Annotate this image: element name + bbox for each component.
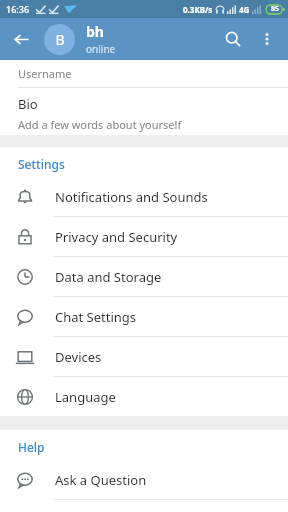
button[interactable]: Privacy and Security xyxy=(0,217,288,256)
button[interactable]: Back xyxy=(6,24,36,54)
staticText: Add a few words about yourself xyxy=(18,117,182,132)
staticText: Data and Storage xyxy=(55,268,162,286)
staticText: bh xyxy=(86,22,104,41)
staticText: Bio xyxy=(18,95,38,113)
staticText: Notifications and Sounds xyxy=(55,188,208,206)
staticText: Privacy and Security xyxy=(55,228,178,246)
staticText: B xyxy=(55,30,65,49)
staticText: 85 xyxy=(271,4,280,14)
button[interactable]: More options xyxy=(250,22,284,56)
button[interactable]: Ask a Question xyxy=(0,460,288,499)
button[interactable]: Search xyxy=(216,22,250,56)
button[interactable]: Data and Storage xyxy=(0,257,288,296)
button[interactable]: Bio xyxy=(0,88,288,135)
staticText: Username xyxy=(18,66,72,81)
button[interactable]: Username xyxy=(0,60,288,87)
staticText: 16:36 xyxy=(6,3,30,15)
button[interactable]: Devices xyxy=(0,337,288,376)
staticText: 4G xyxy=(239,4,250,15)
staticText: Ask a Question xyxy=(55,471,147,489)
staticText: Language xyxy=(55,388,116,406)
staticText: 0.3KB/s xyxy=(183,4,213,15)
button[interactable]: Language xyxy=(0,377,288,416)
staticText: online xyxy=(86,42,116,56)
staticText: Devices xyxy=(55,348,102,366)
staticText: Settings xyxy=(18,156,65,172)
staticText: Chat Settings xyxy=(55,308,137,326)
button[interactable]: B xyxy=(44,24,75,55)
staticText: Help xyxy=(18,439,45,455)
button[interactable]: Notifications and Sounds xyxy=(0,177,288,216)
button[interactable]: Chat Settings xyxy=(0,297,288,336)
